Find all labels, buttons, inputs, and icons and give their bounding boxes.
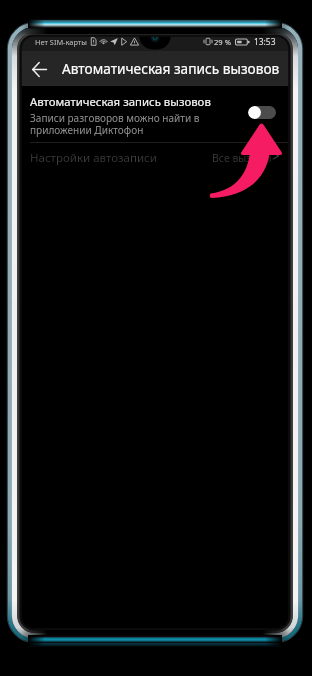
- button[interactable]: Назад: [24, 54, 54, 84]
- staticText: Настройки автозаписи: [30, 150, 157, 166]
- button[interactable]: Настройки автозаписи: [20, 142, 290, 174]
- button[interactable]: Автоматическая запись вызовов: [248, 106, 276, 119]
- staticText: Все вызовы: [212, 151, 272, 165]
- staticText: Автоматическая запись вызовов: [30, 94, 211, 110]
- staticText: 29 %: [214, 37, 231, 47]
- staticText: Нет SIM-карты: [35, 37, 87, 47]
- staticText: 13:53: [254, 36, 276, 47]
- staticText: Записи разговоров можно найти в приложен…: [30, 111, 200, 137]
- button[interactable]: Автоматическая запись вызовов: [20, 86, 290, 142]
- staticText: Автоматическая запись вызовов: [62, 59, 280, 78]
